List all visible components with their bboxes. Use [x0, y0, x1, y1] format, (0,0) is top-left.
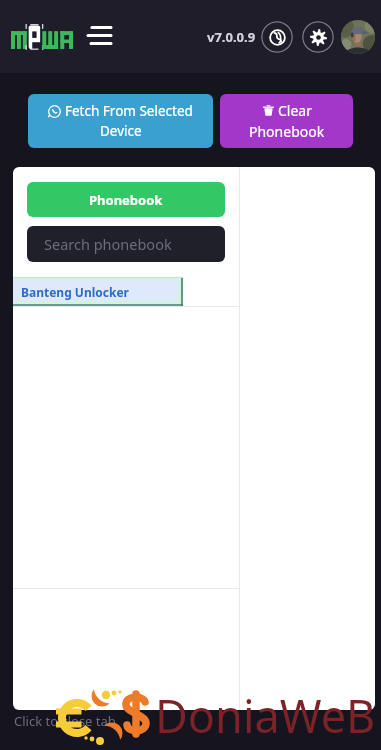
- staticText: Banteng Unlocker: [21, 284, 129, 300]
- staticText: Click to close tab: [14, 712, 116, 730]
- staticText: v7.0.0.9: [207, 28, 256, 46]
- staticText: DoniaWeB: [155, 685, 376, 746]
- button[interactable]: Phonebook: [27, 182, 225, 217]
- staticText: Phonebook: [249, 122, 325, 141]
- button[interactable]: Clear: [220, 94, 353, 148]
- button[interactable]: Search phonebook: [27, 226, 225, 262]
- button[interactable]: Settings: [302, 21, 334, 53]
- staticText: Clear: [278, 101, 312, 120]
- button[interactable]: mPWA home: [11, 22, 73, 51]
- button[interactable]: Dark mode: [261, 21, 293, 53]
- button[interactable]: Profile: [341, 20, 375, 54]
- button[interactable]: Menu: [86, 22, 112, 48]
- button[interactable]: Banteng Unlocker: [13, 277, 183, 306]
- staticText: Phonebook: [89, 191, 163, 209]
- staticText: Fetch From Selected: [65, 102, 193, 120]
- staticText: Device: [100, 122, 142, 140]
- button[interactable]: Fetch From Selected: [28, 94, 213, 148]
- staticText: Search phonebook: [44, 234, 172, 254]
